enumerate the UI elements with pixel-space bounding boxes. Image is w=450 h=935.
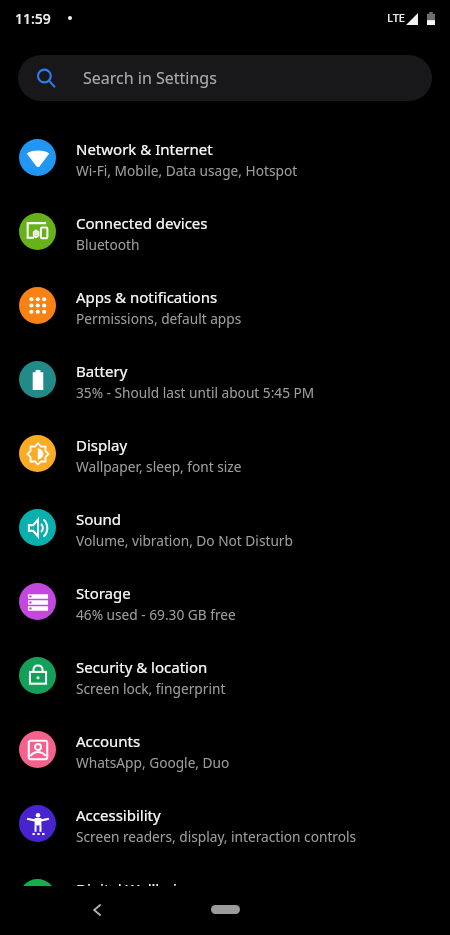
button[interactable]: Network & Internet <box>0 120 450 194</box>
staticText: Bluetooth <box>76 235 140 254</box>
button[interactable]: Accessibility <box>0 786 450 860</box>
staticText: Security & location <box>76 657 208 677</box>
button[interactable]: Display <box>0 416 450 490</box>
staticText: Volume, vibration, Do Not Disturb <box>76 531 293 550</box>
button[interactable]: Connected devices <box>0 194 450 268</box>
staticText: Storage <box>76 583 131 603</box>
staticText: 35% - Should last until about 5:45 PM <box>76 383 315 402</box>
staticText: Battery <box>76 361 128 381</box>
staticText: Screen time, app timers <box>76 901 229 910</box>
staticText: Permissions, default apps <box>76 309 242 328</box>
staticText: Screen readers, display, interaction con… <box>76 827 357 846</box>
staticText: Accessibility <box>76 805 161 825</box>
button[interactable]: Storage <box>0 564 450 638</box>
button[interactable]: Sound <box>0 490 450 564</box>
staticText: Wi-Fi, Mobile, Data usage, Hotspot <box>76 161 298 180</box>
button[interactable]: Search in Settings <box>18 55 432 101</box>
staticText: Connected devices <box>76 213 208 233</box>
button[interactable]: Accounts <box>0 712 450 786</box>
button[interactable]: Back <box>80 893 114 927</box>
staticText: Digital Wellbeing <box>76 879 196 899</box>
staticText: Display <box>76 435 128 455</box>
button[interactable]: Battery <box>0 342 450 416</box>
staticText: 11:59 <box>15 9 51 28</box>
staticText: Accounts <box>76 731 141 751</box>
staticText: Network & Internet <box>76 139 213 159</box>
button[interactable]: Digital Wellbeing <box>0 860 450 910</box>
staticText: Wallpaper, sleep, font size <box>76 457 242 476</box>
staticText: Screen lock, fingerprint <box>76 679 226 698</box>
staticText: Search in Settings <box>83 67 217 89</box>
staticText: WhatsApp, Google, Duo <box>76 753 230 772</box>
staticText: LTE <box>387 10 405 25</box>
button[interactable]: Apps & notifications <box>0 268 450 342</box>
button[interactable]: Home <box>195 897 255 921</box>
staticText: Sound <box>76 509 122 529</box>
staticText: 46% used - 69.30 GB free <box>76 605 236 624</box>
staticText: Apps & notifications <box>76 287 218 307</box>
button[interactable]: Security & location <box>0 638 450 712</box>
